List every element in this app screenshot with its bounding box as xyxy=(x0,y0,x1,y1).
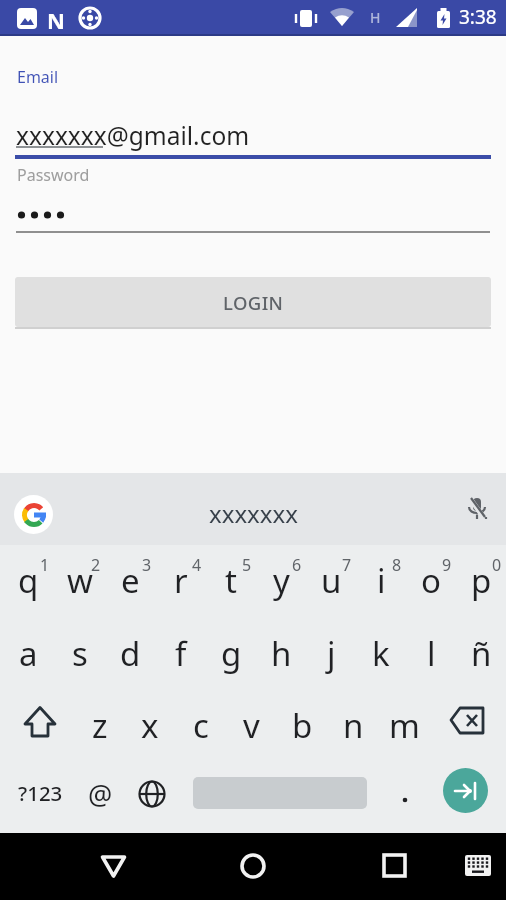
button[interactable] xyxy=(430,761,506,833)
button[interactable] xyxy=(464,496,490,522)
button[interactable]: j xyxy=(306,617,356,689)
staticText: 3:38 xyxy=(459,4,497,30)
button[interactable]: s xyxy=(54,617,105,689)
button[interactable] xyxy=(430,689,506,761)
button[interactable]: t xyxy=(206,545,256,617)
staticText: x xyxy=(141,703,159,748)
button[interactable]: d xyxy=(105,617,156,689)
button[interactable]: z xyxy=(75,689,125,761)
staticText: 1 xyxy=(40,554,50,576)
button[interactable]: c xyxy=(175,689,226,761)
staticText: t xyxy=(225,558,237,603)
button[interactable]: @ xyxy=(75,761,126,833)
staticText: o xyxy=(421,558,441,603)
staticText: w xyxy=(67,558,93,603)
staticText: Email xyxy=(17,66,59,88)
staticText: 8 xyxy=(392,554,402,576)
button[interactable] xyxy=(14,495,53,534)
staticText: 7 xyxy=(342,554,352,576)
button[interactable] xyxy=(379,761,430,833)
button[interactable]: q xyxy=(3,545,54,617)
staticText: f xyxy=(175,631,187,676)
staticText: r xyxy=(174,558,188,603)
button[interactable]: w xyxy=(54,545,105,617)
button[interactable]: g xyxy=(206,617,256,689)
button[interactable]: p xyxy=(456,545,506,617)
staticText: a xyxy=(19,631,38,676)
staticText: y xyxy=(273,558,290,603)
staticText: b xyxy=(292,703,313,748)
staticText: j xyxy=(327,631,336,676)
button[interactable] xyxy=(337,833,506,900)
staticText: u xyxy=(321,558,342,603)
button[interactable]: xxxxxxx@gmail.com xyxy=(16,119,250,152)
staticText: @ xyxy=(88,776,113,813)
button[interactable]: u xyxy=(306,545,356,617)
button[interactable]: l xyxy=(406,617,456,689)
staticText: 9 xyxy=(442,554,452,576)
button[interactable]: n xyxy=(328,689,379,761)
staticText: e xyxy=(121,558,140,603)
button[interactable]: LOGIN xyxy=(15,277,491,327)
button[interactable]: o xyxy=(406,545,456,617)
staticText: k xyxy=(372,631,390,676)
button[interactable]: h xyxy=(256,617,306,689)
staticText: ñ xyxy=(471,631,492,676)
staticText: s xyxy=(72,631,88,676)
staticText: d xyxy=(120,631,141,676)
button[interactable]: r xyxy=(156,545,206,617)
button[interactable]: m xyxy=(379,689,430,761)
staticText: c xyxy=(193,703,209,748)
button[interactable] xyxy=(126,761,177,833)
staticText: 6 xyxy=(292,554,302,576)
staticText: H xyxy=(370,8,381,27)
staticText: p xyxy=(471,558,492,603)
staticText: N xyxy=(47,5,65,35)
staticText: v xyxy=(243,703,260,748)
staticText: LOGIN xyxy=(223,290,284,315)
button[interactable]: f xyxy=(156,617,206,689)
button[interactable]: v xyxy=(226,689,277,761)
staticText: l xyxy=(427,631,436,676)
button[interactable]: x xyxy=(125,689,175,761)
staticText: 4 xyxy=(192,554,202,576)
button[interactable]: y xyxy=(256,545,306,617)
staticText: 3 xyxy=(142,554,152,576)
staticText: m xyxy=(389,703,420,748)
staticText: 0 xyxy=(492,554,502,576)
staticText: h xyxy=(271,631,292,676)
button[interactable]: b xyxy=(277,689,328,761)
button[interactable]: i xyxy=(356,545,406,617)
staticText: 5 xyxy=(242,554,252,576)
staticText: n xyxy=(343,703,364,748)
staticText: 2 xyxy=(91,554,101,576)
button[interactable] xyxy=(168,833,337,900)
button[interactable]: xxxxxxx xyxy=(209,497,298,530)
staticText: g xyxy=(221,631,242,676)
button[interactable]: a xyxy=(3,617,54,689)
button[interactable]: ñ xyxy=(456,617,506,689)
staticText: i xyxy=(377,558,386,603)
button[interactable]: e xyxy=(105,545,156,617)
button[interactable]: ?123 xyxy=(0,761,75,833)
button[interactable] xyxy=(0,833,168,900)
staticText: ?123 xyxy=(18,779,63,807)
button[interactable]: k xyxy=(356,617,406,689)
staticText: Password xyxy=(17,164,90,186)
staticText: z xyxy=(92,703,108,748)
staticText: q xyxy=(18,558,39,603)
button[interactable] xyxy=(0,689,75,761)
button[interactable] xyxy=(177,761,379,833)
